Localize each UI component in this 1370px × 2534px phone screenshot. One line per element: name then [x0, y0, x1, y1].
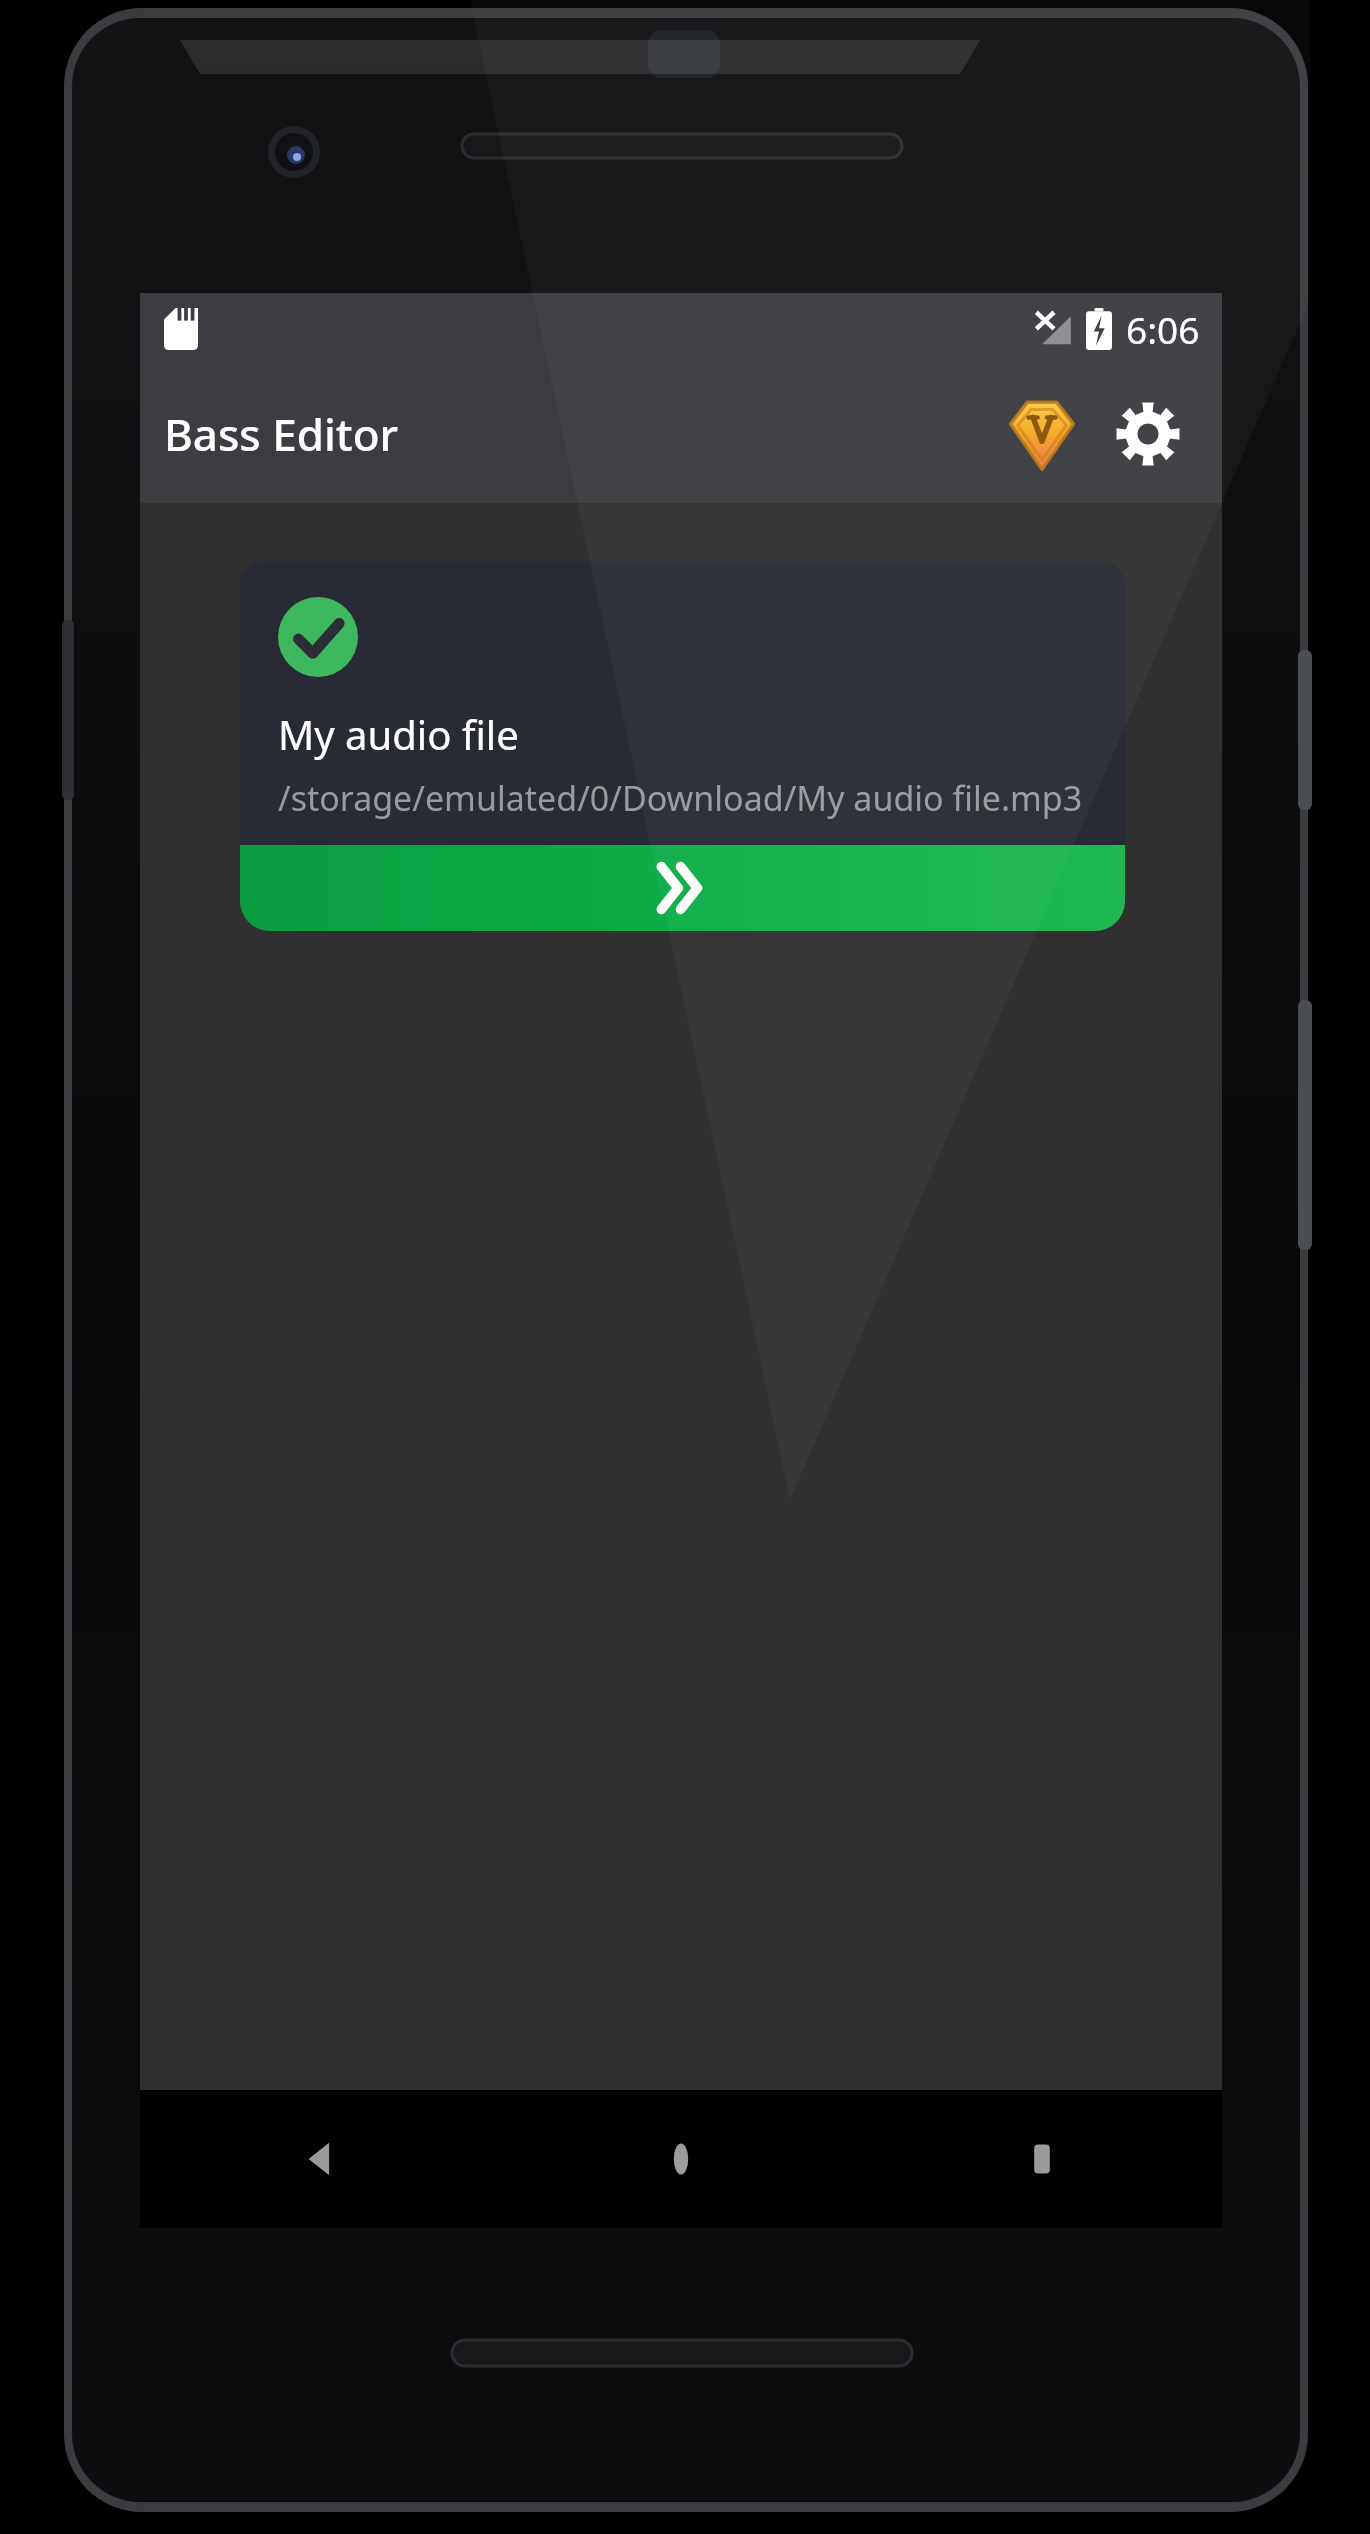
button[interactable]: Continue: [240, 845, 1125, 931]
staticText: Bass Editor: [164, 404, 399, 464]
button[interactable]: Recent apps: [861, 2090, 1222, 2228]
button[interactable]: Premium: [994, 386, 1090, 482]
button[interactable]: Home: [500, 2090, 861, 2228]
staticText: 6:06: [1126, 304, 1200, 354]
button[interactable]: Back: [140, 2090, 500, 2228]
button[interactable]: Settings: [1100, 386, 1196, 482]
button[interactable]: My audio file: [240, 561, 1125, 845]
staticText: My audio file: [278, 707, 519, 761]
staticText: /storage/emulated/0/Download/My audio fi…: [278, 775, 1083, 821]
